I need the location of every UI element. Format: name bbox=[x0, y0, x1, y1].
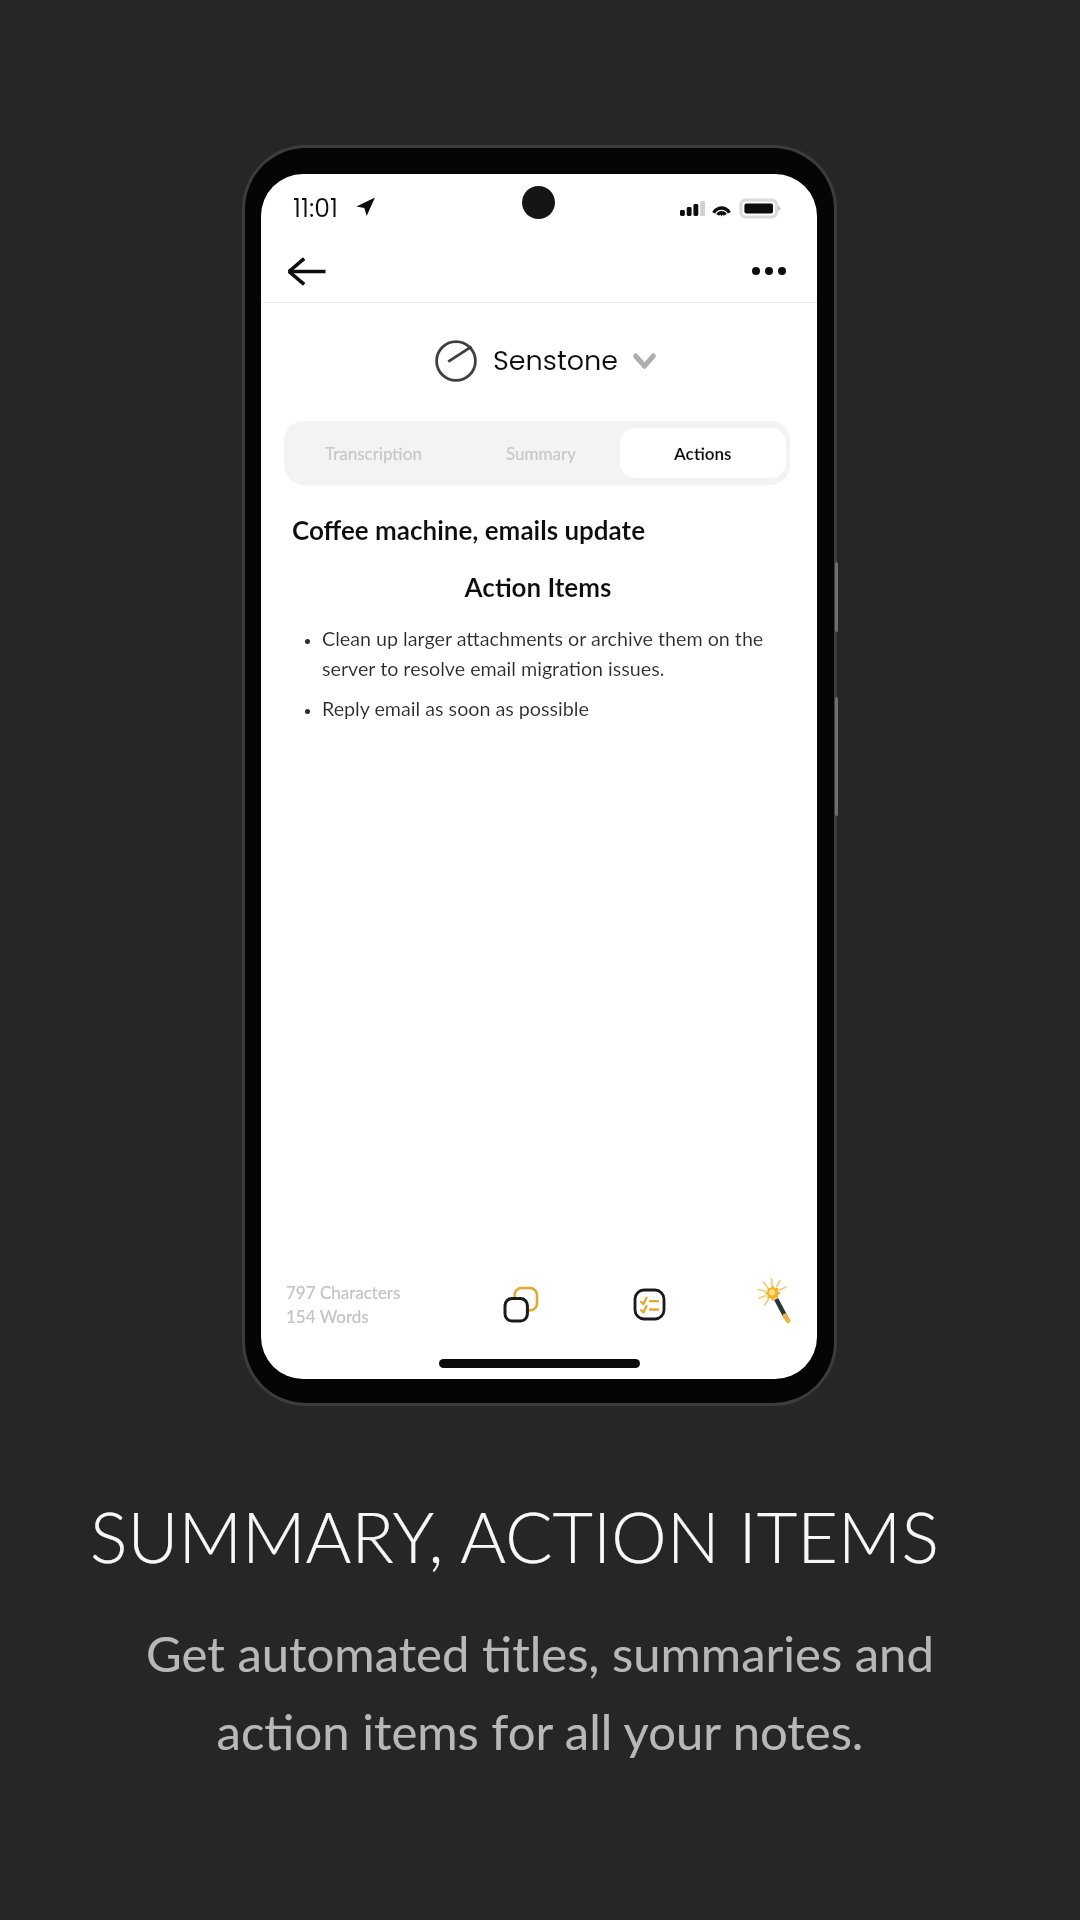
staticText: Transcription bbox=[325, 443, 422, 463]
button[interactable]: Senstone bbox=[435, 338, 656, 384]
staticText: 11:01 bbox=[293, 191, 339, 226]
staticText: Coffee machine, emails update bbox=[292, 514, 646, 545]
staticText: Action Items bbox=[261, 571, 815, 602]
button[interactable]: Action items bbox=[617, 1272, 681, 1336]
staticText: SUMMARY, ACTION ITEMS bbox=[90, 1494, 939, 1578]
staticText: Actions bbox=[674, 443, 732, 463]
staticText: Clean up larger attachments or archive t… bbox=[322, 627, 777, 680]
staticText: Senstone bbox=[493, 342, 619, 380]
staticText: 797 Characters 154 Words bbox=[286, 1282, 401, 1326]
button[interactable]: AI magic bbox=[743, 1272, 807, 1336]
button[interactable]: Transcription bbox=[284, 421, 462, 485]
staticText: Get automated titles, summaries and acti… bbox=[146, 1624, 934, 1761]
button[interactable]: More options bbox=[734, 246, 804, 296]
staticText: Summary bbox=[506, 443, 576, 463]
button[interactable]: Summary bbox=[462, 421, 620, 485]
staticText: Reply email as soon as possible bbox=[322, 697, 589, 721]
button[interactable]: Copy bbox=[489, 1272, 553, 1336]
button[interactable]: Actions bbox=[620, 428, 786, 478]
button[interactable]: Back bbox=[261, 240, 329, 302]
